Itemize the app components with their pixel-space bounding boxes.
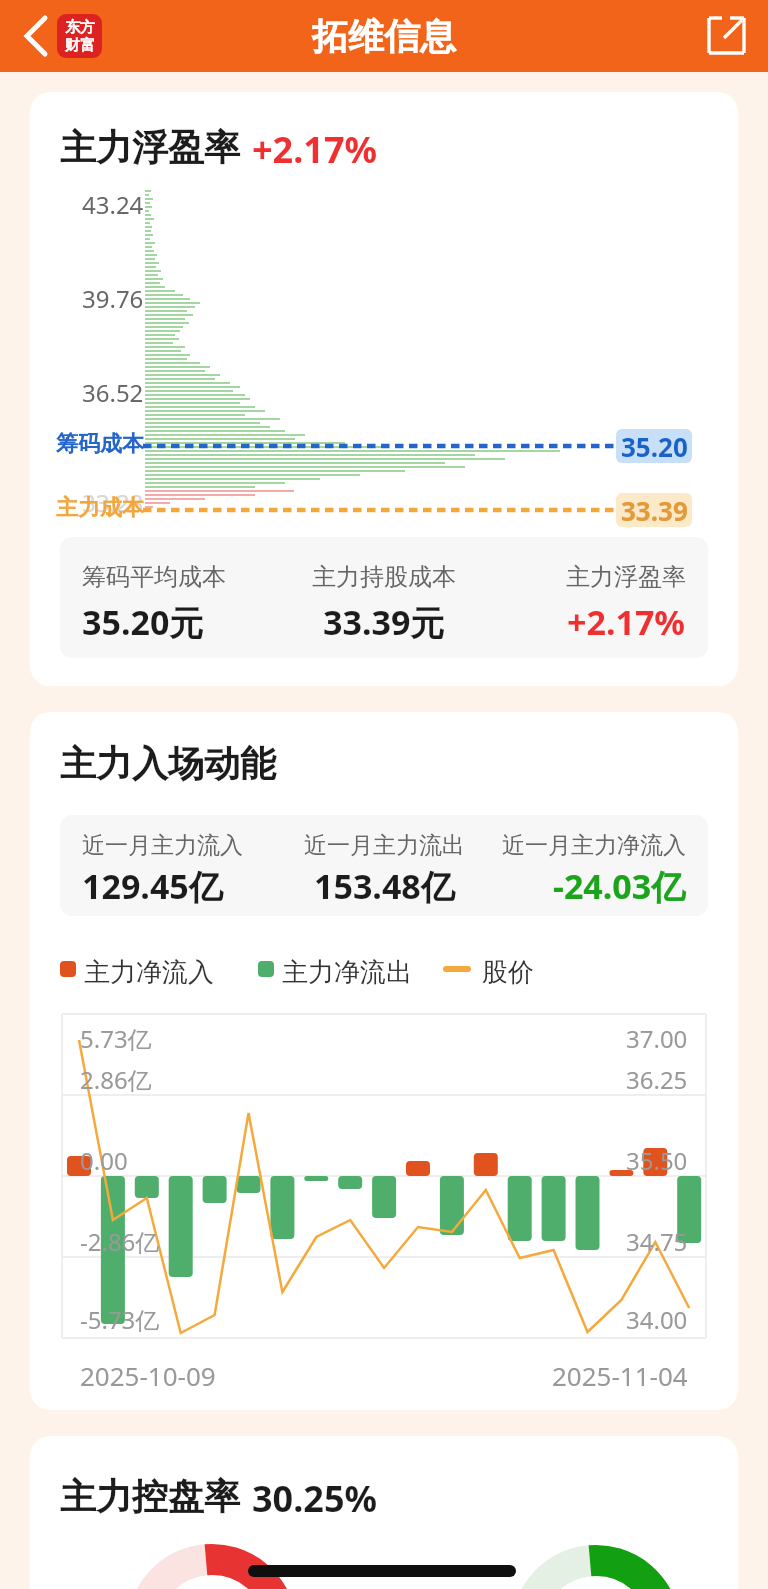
button[interactable]: 东方 财富: [57, 14, 102, 58]
staticText: 39.76: [82, 282, 144, 315]
staticText: 0.00: [80, 1144, 128, 1177]
staticText: 36.52: [82, 376, 144, 409]
staticText: 筹码平均成本: [82, 562, 226, 592]
button[interactable]: [18, 12, 58, 60]
staticText: 主力成本: [56, 494, 144, 522]
staticText: +2.17%: [567, 599, 686, 645]
staticText: 东方 财富: [65, 18, 95, 55]
staticText: 主力浮盈率: [566, 562, 686, 592]
staticText: 拓维信息: [312, 14, 456, 59]
staticText: 主力控盘率: [60, 1474, 240, 1519]
staticText: -2.86亿: [80, 1225, 160, 1258]
staticText: -5.73亿: [80, 1303, 160, 1336]
staticText: 43.24: [82, 188, 144, 221]
staticText: -24.03亿: [553, 863, 686, 909]
staticText: 129.45亿: [82, 863, 223, 909]
staticText: 主力持股成本: [312, 562, 456, 592]
staticText: 近一月主力流出: [304, 831, 465, 860]
staticText: 主力入场动能: [60, 741, 276, 786]
staticText: 35.20元: [82, 599, 204, 645]
staticText: 主力净流出: [282, 956, 412, 989]
staticText: 近一月主力净流入: [502, 831, 686, 860]
staticText: 35.20: [621, 429, 688, 463]
staticText: 34.00: [626, 1303, 688, 1336]
staticText: 主力浮盈率: [60, 125, 240, 170]
staticText: 30.25%: [252, 1474, 377, 1523]
staticText: 33.39: [621, 493, 688, 527]
staticText: 33.39元: [323, 599, 445, 645]
button[interactable]: [703, 12, 751, 60]
staticText: 主力净流入: [84, 956, 214, 989]
staticText: 2.86亿: [80, 1063, 152, 1096]
staticText: 33.28: [82, 486, 144, 519]
staticText: +2.17%: [252, 125, 377, 174]
staticText: 2025-11-04: [552, 1358, 688, 1393]
staticText: 5.73亿: [80, 1022, 152, 1055]
staticText: 36.25: [626, 1063, 688, 1096]
staticText: 近一月主力流入: [82, 831, 243, 860]
staticText: 153.48亿: [314, 863, 455, 909]
staticText: 筹码成本: [56, 430, 144, 458]
staticText: 34.75: [626, 1225, 688, 1258]
staticText: 股价: [482, 956, 534, 989]
staticText: 2025-10-09: [80, 1358, 216, 1393]
staticText: 35.50: [626, 1144, 688, 1177]
staticText: 37.00: [626, 1022, 688, 1055]
